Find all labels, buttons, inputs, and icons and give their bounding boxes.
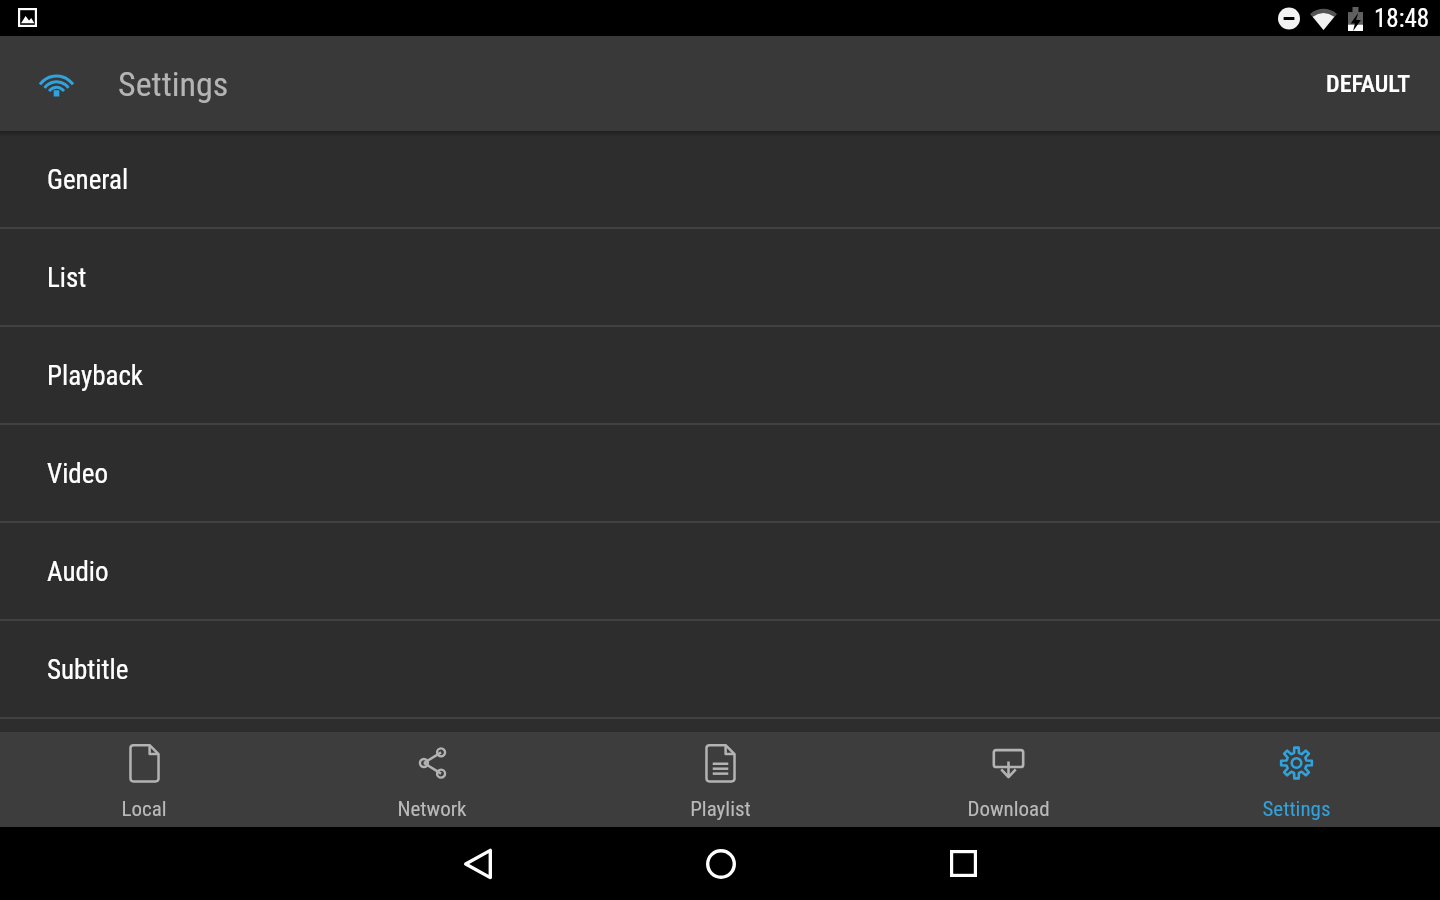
staticText: DEFAULT <box>1326 70 1411 98</box>
button[interactable]: Back <box>356 827 599 900</box>
button[interactable]: Network status <box>24 52 88 116</box>
button[interactable]: Playlist <box>576 732 864 827</box>
staticText: List <box>47 262 87 294</box>
button[interactable]: General <box>0 131 1440 229</box>
staticText: Settings <box>118 64 229 104</box>
staticText: Local <box>121 797 167 822</box>
button[interactable]: Local <box>0 732 288 827</box>
button[interactable]: Audio <box>0 523 1440 621</box>
staticText: Subtitle <box>47 654 129 686</box>
button[interactable]: List <box>0 229 1440 327</box>
button[interactable]: Video <box>0 425 1440 523</box>
staticText: 18:48 <box>1374 4 1430 33</box>
staticText: Playback <box>47 360 144 392</box>
button[interactable]: Settings <box>1152 732 1440 827</box>
button[interactable]: Download <box>864 732 1152 827</box>
button[interactable]: Network <box>288 732 576 827</box>
staticText: Video <box>47 458 108 490</box>
button[interactable]: Recent apps <box>842 827 1085 900</box>
staticText: Playlist <box>690 797 751 822</box>
staticText: Settings <box>1262 797 1331 822</box>
staticText: General <box>47 164 129 196</box>
staticText: Audio <box>47 556 109 588</box>
staticText: Download <box>967 797 1050 822</box>
button[interactable]: Home <box>599 827 842 900</box>
button[interactable]: Playback <box>0 327 1440 425</box>
button[interactable]: DEFAULT <box>1310 58 1427 110</box>
button[interactable]: Subtitle <box>0 621 1440 719</box>
staticText: Network <box>397 797 467 822</box>
